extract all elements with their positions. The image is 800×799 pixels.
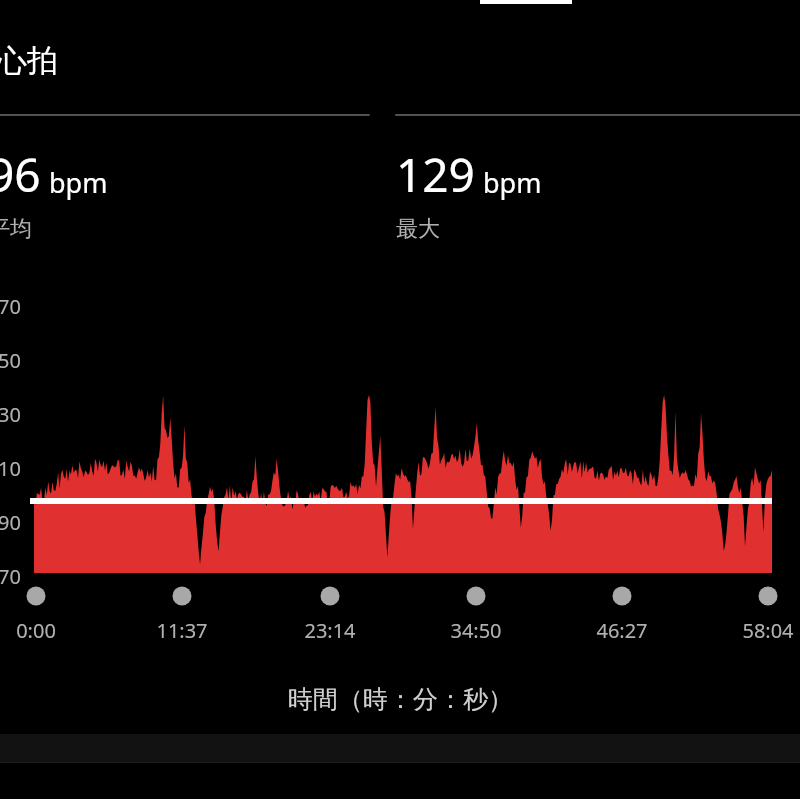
staticText: 11:37 [156,617,208,644]
button[interactable]: Heart rate chart [0,0,800,799]
staticText: bpm [483,164,542,201]
staticText: 時間（時：分：秒） [288,684,513,715]
staticText: 70 [0,293,21,320]
staticText: 0:00 [16,617,56,644]
staticText: 96 [0,143,41,206]
staticText: 最大 [396,215,440,243]
staticText: 129 [396,143,475,206]
staticText: 90 [0,509,21,536]
staticText: 平均 [0,215,32,243]
staticText: 心拍 [0,41,58,80]
staticText: 34:50 [450,617,502,644]
staticText: 70 [0,563,21,590]
staticText: 10 [0,455,21,482]
staticText: 23:14 [304,617,356,644]
staticText: 50 [0,347,21,374]
staticText: bpm [49,164,108,201]
staticText: 46:27 [596,617,648,644]
staticText: 30 [0,401,21,428]
staticText: 58:04 [742,617,794,644]
